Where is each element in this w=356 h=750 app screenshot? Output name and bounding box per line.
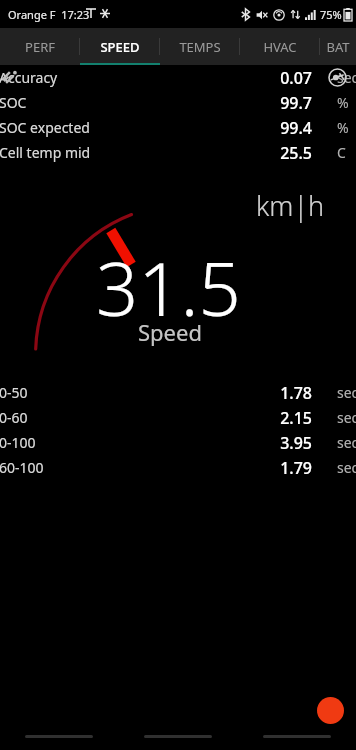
staticText: HVAC <box>263 38 297 56</box>
staticText: % <box>337 118 349 137</box>
button[interactable]: TEMPS <box>160 28 240 65</box>
staticText: 25.5 <box>280 142 312 164</box>
staticText: 0.07 <box>280 67 312 89</box>
staticText: km|h <box>256 187 325 224</box>
staticText: 1.79 <box>280 457 312 479</box>
staticText: 1.78 <box>280 382 312 404</box>
staticText: BAT <box>326 38 350 56</box>
staticText: Accuracy <box>0 68 58 87</box>
button[interactable]: Accuracy <box>0 65 356 90</box>
staticText: 99.7 <box>280 92 312 114</box>
button[interactable]: SOC expected <box>0 115 356 140</box>
staticText: Orange F 17:23 <box>8 7 90 22</box>
button[interactable]: SPEED <box>80 28 160 65</box>
staticText: SOC <box>0 93 27 112</box>
button[interactable]: Home <box>118 728 237 745</box>
button[interactable]: 0-100 <box>0 430 356 455</box>
button[interactable]: PERF <box>0 28 80 65</box>
staticText: SOC expected <box>0 118 90 137</box>
staticText: 99.4 <box>280 117 312 139</box>
button[interactable]: 0-60 <box>0 405 356 430</box>
staticText: Cell temp mid <box>0 143 91 162</box>
staticText: sec <box>337 68 356 87</box>
staticText: SPEED <box>100 38 140 56</box>
button[interactable]: 0-50 <box>0 380 356 405</box>
staticText: Speed <box>138 317 202 347</box>
staticText: C <box>337 143 346 162</box>
staticText: 0-100 <box>0 433 36 452</box>
button[interactable]: HVAC <box>240 28 320 65</box>
staticText: PERF <box>25 38 55 56</box>
button[interactable]: Cell temp mid <box>0 140 356 165</box>
staticText: TEMPS <box>179 38 221 56</box>
staticText: 60-100 <box>0 458 44 477</box>
button[interactable]: Recents <box>237 728 356 745</box>
other: GPS status <box>1 69 18 86</box>
staticText: 2.15 <box>280 407 312 429</box>
staticText: sec <box>337 433 356 452</box>
staticText: sec <box>337 408 356 427</box>
button[interactable]: BAT <box>320 28 356 65</box>
staticText: 0-60 <box>0 408 28 427</box>
button[interactable]: Back <box>0 728 118 745</box>
button[interactable]: Record <box>317 697 344 724</box>
staticText: 3.95 <box>280 432 312 454</box>
staticText: 31.5 <box>96 237 241 338</box>
staticText: 0-50 <box>0 383 28 402</box>
button[interactable]: SOC <box>0 90 356 115</box>
staticText: 75% <box>320 7 342 22</box>
staticText: sec <box>337 458 356 477</box>
staticText: % <box>337 93 349 112</box>
staticText: sec <box>337 383 356 402</box>
other: Satellite fix <box>328 68 347 87</box>
button[interactable]: 60-100 <box>0 455 356 480</box>
